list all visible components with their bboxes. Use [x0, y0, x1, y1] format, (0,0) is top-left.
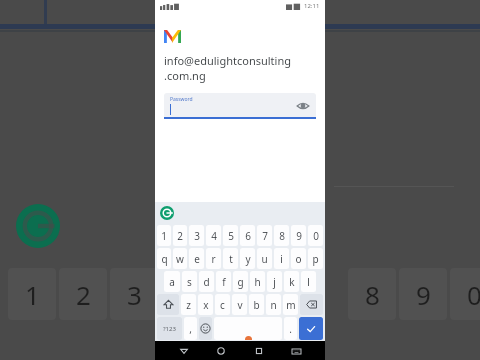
button[interactable]: a	[164, 271, 180, 292]
staticText: k	[289, 275, 295, 289]
staticText: i	[280, 252, 283, 266]
button[interactable]: 7	[257, 225, 272, 246]
staticText: 12:11	[304, 2, 320, 10]
button[interactable]: q	[157, 248, 171, 269]
button[interactable]: g	[233, 271, 248, 292]
button[interactable]: 1	[157, 225, 171, 246]
staticText: 3	[127, 277, 142, 312]
button[interactable]: z	[181, 294, 196, 315]
staticText: 6	[245, 229, 251, 243]
button[interactable]: .	[284, 317, 297, 340]
button[interactable]: 9	[291, 225, 306, 246]
staticText: f	[222, 275, 226, 289]
button[interactable]: Show password	[296, 99, 310, 113]
button[interactable]: Emoji	[199, 317, 212, 340]
staticText: 1	[161, 229, 167, 243]
staticText: x	[203, 298, 209, 312]
staticText: q	[161, 252, 168, 266]
button[interactable]: l	[301, 271, 316, 292]
button[interactable]: p	[308, 248, 323, 269]
button[interactable]: w	[173, 248, 187, 269]
button[interactable]: Recents	[251, 343, 267, 359]
staticText: 2	[76, 277, 91, 312]
staticText: 3	[194, 229, 200, 243]
staticText: y	[245, 252, 251, 266]
staticText: 4	[211, 229, 217, 243]
button[interactable]: s	[182, 271, 197, 292]
staticText: 7	[262, 229, 268, 243]
button[interactable]: ?123	[157, 317, 182, 340]
button[interactable]: o	[291, 248, 306, 269]
staticText: .com.ng	[164, 68, 206, 83]
staticText: w	[176, 252, 184, 266]
staticText: 2	[177, 229, 183, 243]
staticText: a	[169, 275, 175, 289]
button[interactable]: 8	[274, 225, 289, 246]
staticText: Password	[170, 96, 193, 103]
button[interactable]: Shift	[157, 294, 179, 315]
staticText: c	[220, 298, 225, 312]
staticText: 0	[313, 229, 319, 243]
staticText: info@edulightconsulting	[164, 53, 291, 68]
staticText: t	[229, 252, 233, 266]
staticText: .	[289, 322, 292, 336]
button[interactable]: 0	[308, 225, 323, 246]
staticText: 9	[296, 229, 302, 243]
button[interactable]: Space	[214, 317, 282, 340]
button[interactable]: ,	[184, 317, 197, 340]
button[interactable]: k	[284, 271, 299, 292]
button[interactable]: j	[267, 271, 282, 292]
button[interactable]: Switch keyboard	[288, 343, 304, 359]
button[interactable]: Password manager	[160, 206, 174, 220]
button[interactable]: Backspace	[300, 294, 323, 315]
staticText: d	[203, 275, 210, 289]
button[interactable]: 5	[223, 225, 238, 246]
button[interactable]: 3	[189, 225, 204, 246]
button[interactable]: i	[274, 248, 289, 269]
button[interactable]: 2	[173, 225, 187, 246]
staticText: g	[237, 275, 244, 289]
staticText: 1	[25, 277, 40, 312]
staticText: r	[211, 252, 216, 266]
staticText: n	[270, 298, 277, 312]
staticText: e	[194, 252, 200, 266]
button[interactable]: f	[216, 271, 231, 292]
staticText: ,	[189, 322, 192, 336]
staticText: 8	[279, 229, 285, 243]
button[interactable]: h	[250, 271, 265, 292]
staticText: p	[312, 252, 319, 266]
button[interactable]: 4	[206, 225, 221, 246]
button[interactable]: e	[189, 248, 204, 269]
button[interactable]: Password	[164, 93, 316, 119]
staticText: 5	[228, 229, 234, 243]
staticText: m	[286, 298, 296, 312]
button[interactable]: x	[198, 294, 213, 315]
staticText: s	[187, 275, 192, 289]
button[interactable]: c	[215, 294, 230, 315]
button[interactable]: v	[232, 294, 247, 315]
staticText: z	[186, 298, 191, 312]
button[interactable]: r	[206, 248, 221, 269]
button[interactable]: u	[257, 248, 272, 269]
staticText: o	[295, 252, 302, 266]
button[interactable]: 6	[240, 225, 255, 246]
button[interactable]: y	[240, 248, 255, 269]
button[interactable]: n	[266, 294, 281, 315]
button[interactable]: m	[283, 294, 298, 315]
staticText: 0	[467, 277, 480, 312]
staticText: j	[273, 275, 276, 289]
button[interactable]: Home	[213, 343, 229, 359]
staticText: b	[253, 298, 260, 312]
staticText: ?123	[163, 325, 176, 333]
button[interactable]: Back	[176, 343, 192, 359]
staticText: v	[237, 298, 243, 312]
staticText: u	[261, 252, 268, 266]
staticText: l	[307, 275, 310, 289]
button[interactable]: t	[223, 248, 238, 269]
button[interactable]: d	[199, 271, 214, 292]
staticText: h	[254, 275, 261, 289]
button[interactable]: b	[249, 294, 264, 315]
staticText: 9	[416, 277, 431, 312]
staticText: 8	[365, 277, 380, 312]
button[interactable]: Done	[299, 317, 323, 340]
